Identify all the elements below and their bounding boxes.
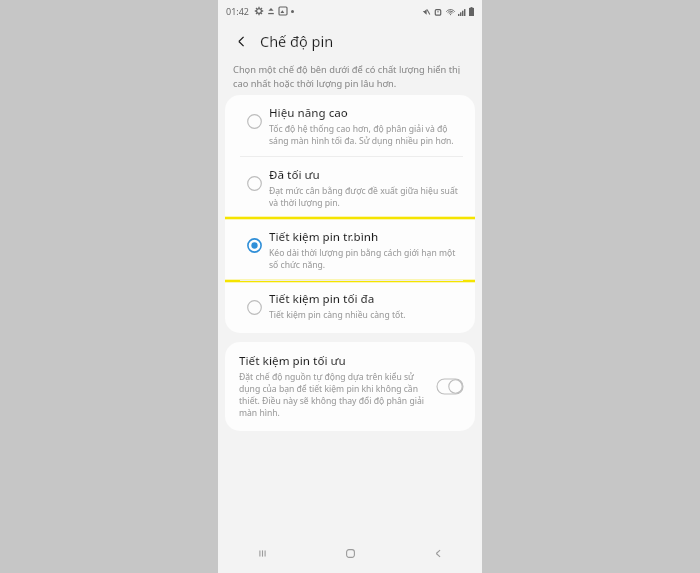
button[interactable]: Tiết kiệm pin tối ưu [225,342,475,431]
staticText: Đã tối ưu [269,167,320,183]
staticText: Đạt mức cân bằng được đề xuất giữa hiệu … [269,185,461,209]
button[interactable]: Back [229,29,253,53]
button[interactable]: Recents [218,533,306,573]
staticText: Tiết kiệm pin tối đa [269,291,375,307]
staticText: Tốc độ hệ thống cao hơn, độ phân giải và… [269,123,461,147]
button[interactable]: Toggle optimised battery saver [437,379,463,394]
button[interactable]: Đã tối ưu [225,157,475,218]
staticText: Tiết kiệm pin càng nhiều càng tốt. [269,309,406,321]
button[interactable]: Back [394,533,482,573]
staticText: Hiệu năng cao [269,105,348,121]
staticText: Đặt chế độ nguồn tự động dựa trên kiểu s… [239,371,429,419]
staticText: Chọn một chế độ bên dưới để có chất lượn… [233,63,464,90]
button[interactable]: Hiệu năng cao [225,95,475,156]
staticText: 01:42 [226,5,250,17]
button[interactable]: Home [306,533,394,573]
staticText: Kéo dài thời lượng pin bằng cách giới hạ… [269,247,461,271]
button[interactable]: Tiết kiệm pin tối đa [225,281,475,333]
staticText: Chế độ pin [260,31,334,51]
button[interactable]: Tiết kiệm pin tr.bình [225,219,475,280]
staticText: Tiết kiệm pin tr.bình [269,229,379,245]
staticText: Tiết kiệm pin tối ưu [239,353,346,369]
